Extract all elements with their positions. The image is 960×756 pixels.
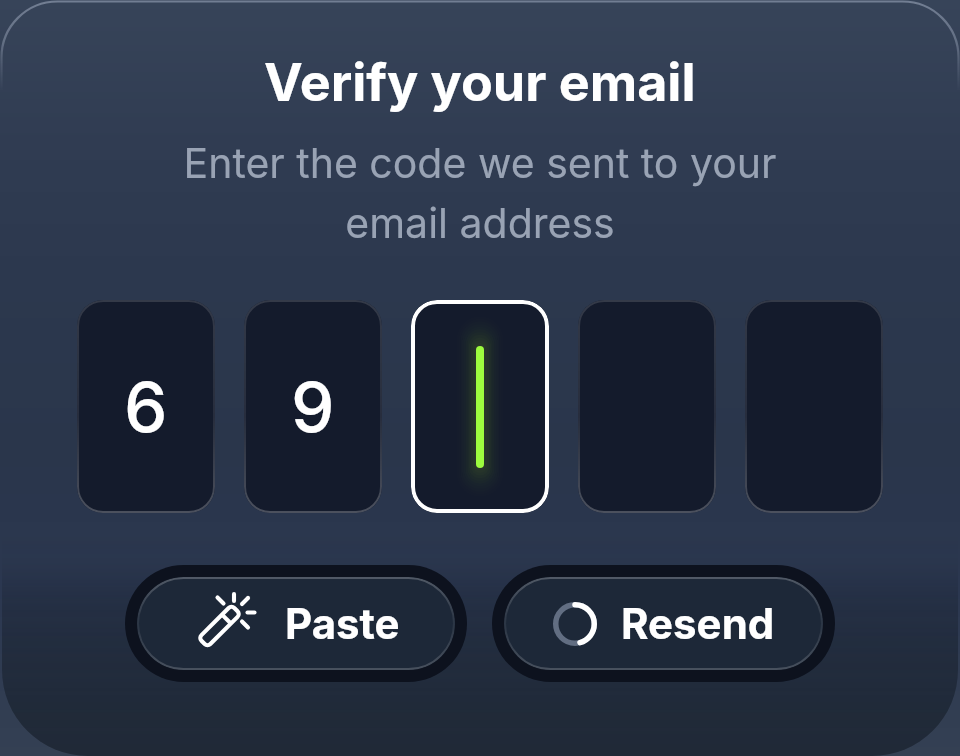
staticText: Verify your email: [264, 51, 696, 114]
staticText: Paste: [285, 598, 400, 649]
staticText: Resend: [621, 598, 775, 649]
staticText: 6: [124, 365, 168, 448]
staticText: 9: [291, 365, 335, 448]
button[interactable]: 6: [77, 300, 215, 513]
staticText: Enter the code we sent to your email add…: [160, 138, 800, 248]
other: Paste: [193, 590, 261, 658]
button[interactable]: [411, 300, 549, 513]
button[interactable]: [745, 300, 883, 513]
button[interactable]: Paste: [137, 577, 455, 670]
button[interactable]: Resend: [504, 577, 823, 670]
button[interactable]: 9: [244, 300, 382, 513]
button[interactable]: [578, 300, 716, 513]
other: Resend: [553, 602, 597, 646]
